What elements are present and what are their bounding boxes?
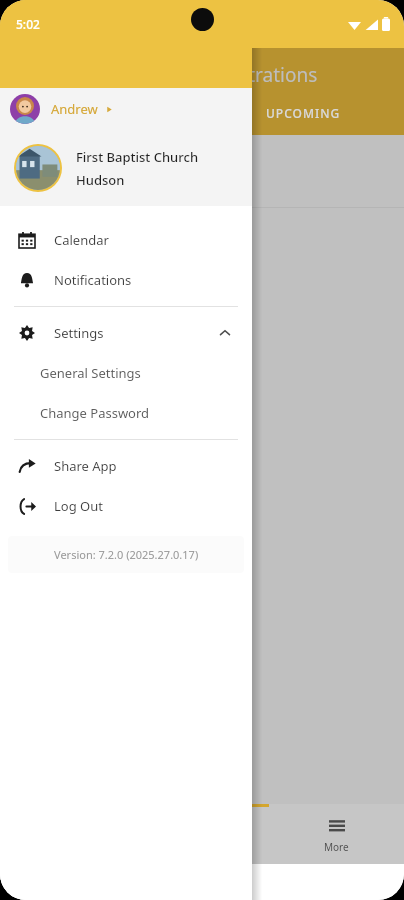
- button[interactable]: More: [269, 804, 404, 864]
- staticText: General Settings: [40, 364, 141, 382]
- button[interactable]: First Baptist Church: [0, 130, 252, 206]
- button[interactable]: Calendar: [0, 220, 252, 260]
- other: More: [327, 815, 347, 835]
- staticText: Change Password: [40, 404, 150, 422]
- staticText: Log Out: [54, 497, 103, 515]
- staticText: Settings: [54, 324, 104, 342]
- staticText: UPCOMING: [266, 105, 341, 121]
- staticText: Share App: [54, 457, 117, 475]
- button[interactable]: Settings: [0, 313, 252, 353]
- button[interactable]: Andrew: [0, 88, 252, 130]
- staticText: 5:02: [16, 16, 40, 32]
- staticText: First Baptist Church: [76, 148, 199, 166]
- staticText: Hudson: [76, 171, 125, 189]
- button[interactable]: Share App: [0, 446, 252, 486]
- staticText: Registrations: [200, 62, 318, 88]
- staticText: Calendar: [54, 231, 109, 249]
- staticText: Version: 7.2.0 (2025.27.0.17): [54, 547, 199, 562]
- button[interactable]: My Registrations: [134, 804, 269, 864]
- button[interactable]: Change Password: [0, 393, 252, 433]
- staticText: Andrew: [51, 100, 98, 118]
- button[interactable]: General Settings: [0, 353, 252, 393]
- staticText: Notifications: [54, 271, 132, 289]
- button[interactable]: Log Out: [0, 486, 252, 526]
- staticText: More: [324, 840, 349, 854]
- button[interactable]: Notifications: [0, 260, 252, 300]
